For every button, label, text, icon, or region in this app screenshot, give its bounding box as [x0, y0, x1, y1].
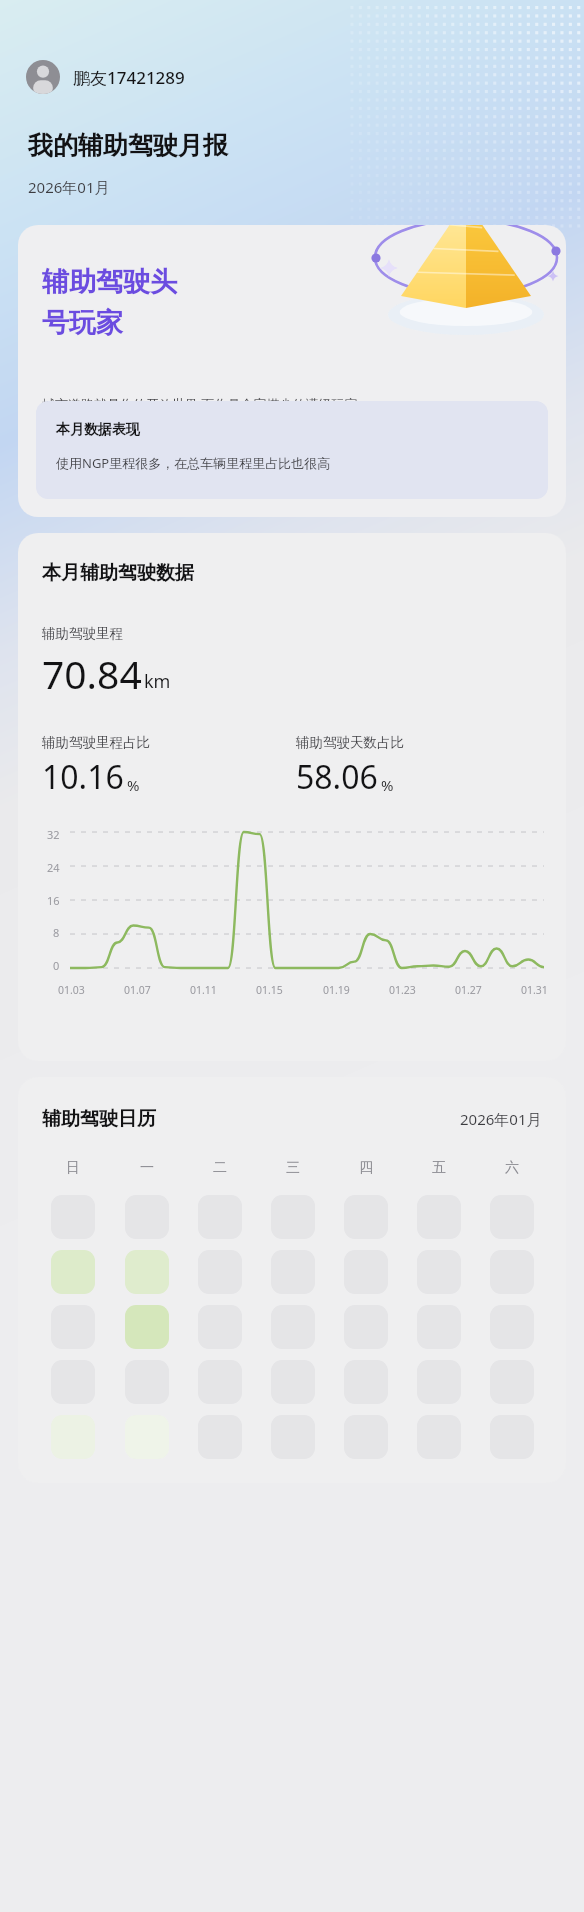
staticText: 辅助驾驶天数占比 [296, 734, 404, 751]
button[interactable] [125, 1305, 169, 1349]
staticText: 一 [140, 1159, 154, 1177]
staticText: 我的辅助驾驶月报 [28, 130, 228, 161]
staticText: 辅助驾驶日历 [42, 1107, 156, 1131]
staticText: 五 [432, 1159, 446, 1177]
button[interactable]: 本月数据表现 [36, 401, 548, 499]
staticText: 01.11 [190, 983, 217, 997]
staticText: 01.03 [58, 983, 85, 997]
staticText: % [127, 775, 140, 795]
staticText: 16 [47, 893, 60, 908]
staticText: 01.27 [455, 983, 482, 997]
staticText: 日 [66, 1159, 80, 1177]
staticText: 8 [53, 925, 60, 940]
staticText: 2026年01月 [28, 177, 110, 197]
staticText: % [381, 775, 394, 795]
staticText: 鹏友17421289 [73, 66, 185, 89]
staticText: 01.23 [389, 983, 416, 997]
staticText: 70.84 [42, 647, 142, 700]
button[interactable]: 鹏友17421289 [26, 60, 185, 94]
staticText: 城市道路就是你的开放世界,而你是金字塔尖的满级玩家 [42, 395, 358, 413]
staticText: 号玩家 [42, 306, 123, 340]
staticText: 24 [47, 860, 60, 875]
staticText: 本月数据表现 [56, 421, 140, 439]
button[interactable]: Trophy pyramid [18, 225, 566, 517]
button[interactable]: 本月辅助驾驶数据 [18, 533, 566, 1061]
staticText: 01.07 [124, 983, 151, 997]
staticText: 辅助驾驶头 [42, 265, 177, 299]
staticText: 32 [47, 827, 60, 842]
staticText: 二 [213, 1159, 227, 1177]
staticText: 10.16 [42, 755, 124, 799]
staticText: 58.06 [296, 755, 378, 799]
staticText: 辅助驾驶里程占比 [42, 734, 150, 751]
staticText: 01.19 [323, 983, 350, 997]
button[interactable]: 辅助驾驶日历 [18, 1077, 566, 1483]
staticText: 01.31 [521, 983, 548, 997]
staticText: 四 [359, 1159, 373, 1177]
staticText: 使用NGP里程很多，在总车辆里程里占比也很高 [56, 454, 331, 472]
staticText: 01.15 [256, 983, 283, 997]
staticText: 辅助驾驶里程 [42, 625, 123, 642]
staticText: 2026年01月 [460, 1109, 542, 1129]
staticText: 0 [53, 958, 60, 973]
staticText: 三 [286, 1159, 300, 1177]
staticText: 六 [505, 1159, 519, 1177]
staticText: km [144, 669, 171, 694]
other: Trophy pyramid [360, 225, 560, 363]
button[interactable] [51, 1250, 95, 1294]
staticText: 本月辅助驾驶数据 [42, 561, 194, 585]
button[interactable] [125, 1250, 169, 1294]
